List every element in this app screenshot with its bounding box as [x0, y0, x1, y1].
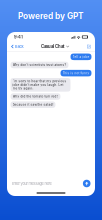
staticText: Because it saw the salad! — [12, 103, 53, 106]
button[interactable]: New chat — [87, 43, 91, 50]
staticText: 9:41 — [14, 34, 23, 39]
button[interactable]: Back — [11, 43, 24, 50]
staticText: Why did the tomato turn red? — [12, 95, 58, 98]
button[interactable]: Send — [83, 180, 90, 187]
staticText: Enter your message here — [11, 181, 51, 186]
staticText: Powered by GPT — [18, 11, 84, 21]
staticText: Casual Chat — [41, 44, 65, 49]
staticText: I'm sorry to hear that my previous joke … — [12, 79, 66, 90]
staticText: Tell a joke — [72, 55, 89, 59]
staticText: Back — [15, 44, 24, 49]
staticText: Why don't scientists trust atoms? — [12, 63, 66, 67]
staticText: This is not funny — [62, 71, 89, 75]
button[interactable]: Casual Chat — [41, 42, 69, 51]
